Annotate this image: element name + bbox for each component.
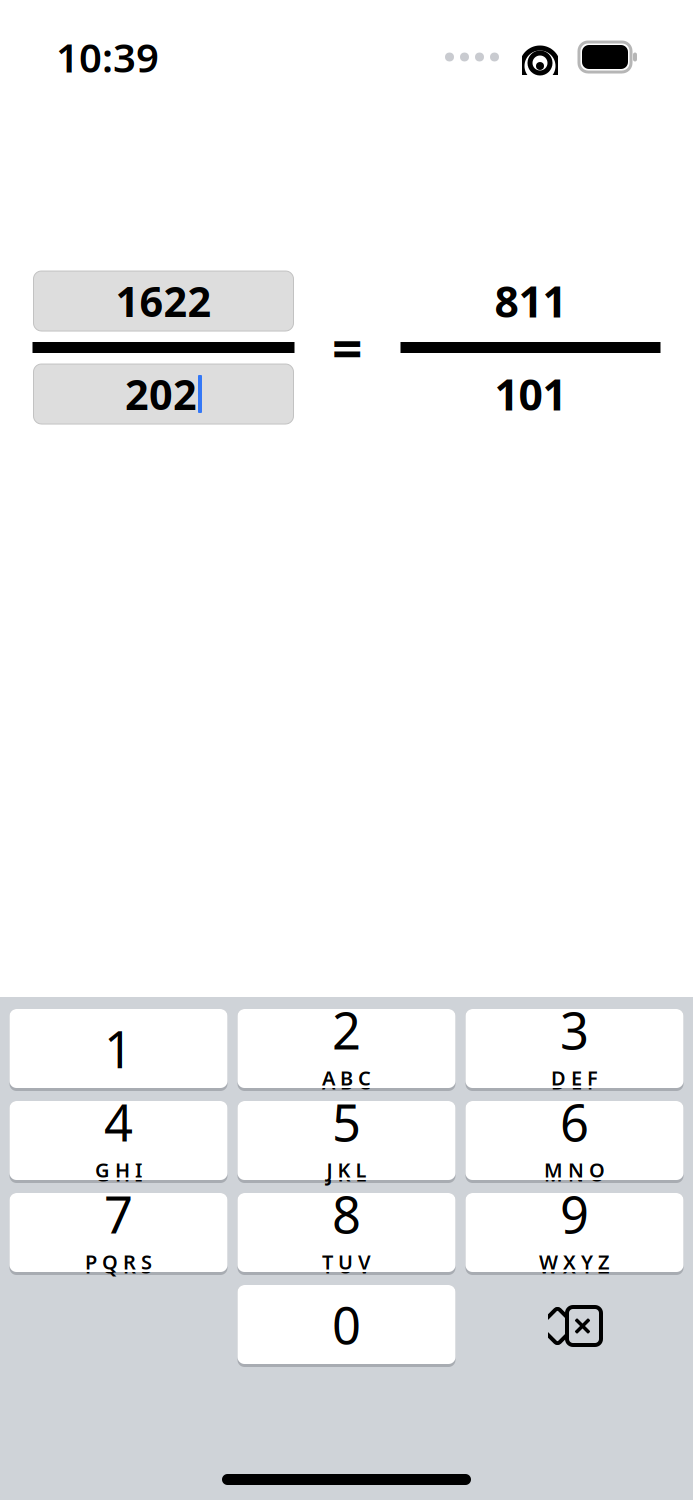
staticText: 7: [104, 1180, 133, 1247]
button[interactable]: 2: [237, 1009, 455, 1091]
staticText: G H I: [95, 1156, 142, 1183]
button[interactable]: 0: [237, 1285, 455, 1367]
staticText: T U V: [322, 1252, 371, 1279]
button[interactable]: 8: [237, 1193, 455, 1275]
staticText: 2: [332, 999, 361, 1066]
staticText: D E F: [551, 1068, 598, 1095]
staticText: 9: [560, 1183, 589, 1250]
button[interactable]: 5: [237, 1101, 455, 1183]
staticText: 4: [104, 1088, 133, 1155]
staticText: J K L: [326, 1160, 366, 1187]
staticText: 1622: [115, 274, 211, 328]
staticText: 6: [560, 1088, 589, 1155]
staticText: 5: [332, 1088, 361, 1155]
staticText: 1: [104, 1015, 133, 1082]
staticText: 8: [332, 1183, 361, 1250]
staticText: 0: [332, 1292, 361, 1360]
staticText: P Q R S: [85, 1252, 152, 1279]
staticText: W X Y Z: [539, 1252, 610, 1279]
staticText: T U V: [322, 1248, 371, 1275]
button[interactable]: 9: [465, 1193, 683, 1275]
staticText: 9: [560, 1180, 589, 1247]
staticText: 1: [104, 1016, 133, 1084]
staticText: G H I: [95, 1160, 142, 1187]
button[interactable]: 4: [9, 1101, 227, 1183]
staticText: =: [332, 312, 363, 383]
staticText: 5: [332, 1091, 361, 1158]
staticText: A B C: [322, 1068, 371, 1095]
button[interactable]: 1: [9, 1009, 227, 1091]
staticText: P Q R S: [85, 1248, 152, 1275]
staticText: 2: [332, 996, 361, 1063]
staticText: 6: [560, 1091, 589, 1158]
staticText: M N O: [544, 1160, 605, 1187]
staticText: 3: [560, 996, 589, 1063]
staticText: 7: [104, 1183, 133, 1250]
staticText: W X Y Z: [539, 1248, 610, 1275]
button[interactable]: 7: [9, 1193, 227, 1275]
button[interactable]: Delete: [539, 1298, 609, 1354]
button[interactable]: 202: [33, 364, 293, 424]
button[interactable]: 3: [465, 1009, 683, 1091]
staticText: M N O: [544, 1156, 605, 1183]
button[interactable]: 6: [465, 1101, 683, 1183]
staticText: 8: [332, 1180, 361, 1247]
staticText: 0: [332, 1291, 361, 1358]
staticText: 101: [494, 366, 566, 422]
staticText: A B C: [322, 1064, 371, 1091]
staticText: 3: [560, 999, 589, 1066]
staticText: 10:39: [56, 30, 159, 83]
staticText: D E F: [551, 1064, 598, 1091]
button[interactable]: 1622: [33, 271, 293, 331]
staticText: 4: [104, 1091, 133, 1158]
staticText: J K L: [326, 1156, 366, 1183]
staticText: 811: [494, 273, 566, 329]
staticText: 202: [125, 367, 197, 421]
